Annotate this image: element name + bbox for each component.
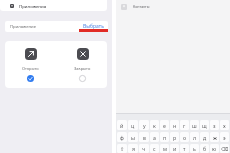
staticText: у — [143, 122, 146, 129]
staticText: Закрыто — [74, 66, 91, 71]
staticText: ш — [192, 122, 197, 129]
button[interactable]: т — [180, 144, 189, 153]
staticText: ю — [212, 145, 217, 152]
button[interactable]: р — [170, 132, 179, 142]
button[interactable]: Закрыть — [58, 48, 107, 82]
button[interactable]: я — [128, 144, 138, 153]
button[interactable]: ж — [210, 132, 219, 142]
button[interactable]: Открыть — [6, 48, 55, 82]
button[interactable]: н — [170, 120, 179, 130]
staticText: д — [203, 134, 207, 141]
staticText: х — [223, 122, 226, 129]
button[interactable]: у — [139, 120, 149, 130]
button[interactable]: к — [150, 120, 159, 130]
button[interactable]: л — [190, 132, 199, 142]
staticText: и — [173, 145, 177, 152]
staticText: п — [163, 134, 167, 141]
button[interactable]: й — [117, 120, 127, 130]
button[interactable]: х — [220, 120, 229, 130]
button[interactable]: Приложение — [5, 21, 108, 32]
button[interactable]: м — [160, 144, 169, 153]
button[interactable]: ц — [128, 120, 138, 130]
button[interactable]: ь — [190, 144, 199, 153]
staticText: Приложения — [19, 3, 47, 9]
staticText: г — [183, 122, 186, 129]
staticText: ь — [193, 145, 196, 152]
button[interactable]: о — [180, 132, 189, 142]
staticText: Контакты — [133, 4, 150, 9]
button[interactable]: д — [200, 132, 209, 142]
staticText: Приложение — [10, 24, 36, 30]
staticText: н — [173, 122, 177, 129]
staticText: м — [163, 145, 167, 152]
staticText: Открыто — [22, 66, 39, 71]
button[interactable]: Приложения — [0, 0, 107, 11]
button[interactable]: Контакты — [121, 0, 230, 13]
staticText: к — [153, 122, 156, 129]
staticText: е — [163, 122, 166, 129]
button[interactable]: п — [160, 132, 169, 142]
button[interactable]: ф — [117, 132, 127, 142]
button[interactable]: щ — [200, 120, 209, 130]
button[interactable]: з — [210, 120, 219, 130]
staticText: з — [213, 122, 216, 129]
staticText: т — [183, 145, 186, 152]
button[interactable]: ⇧ — [117, 144, 127, 153]
other: Контакты — [121, 4, 127, 10]
staticText: а — [153, 134, 156, 141]
button[interactable]: а — [150, 132, 159, 142]
staticText: Выбрать — [83, 23, 104, 30]
button[interactable]: в — [139, 132, 149, 142]
button[interactable]: и — [170, 144, 179, 153]
button[interactable]: ч — [139, 144, 149, 153]
button[interactable]: ю — [210, 144, 219, 153]
staticText: р — [173, 134, 177, 141]
staticText: ⌫ — [221, 146, 229, 152]
staticText: в — [143, 134, 146, 141]
staticText: й — [120, 122, 124, 129]
staticText: я — [132, 145, 135, 152]
button[interactable]: ш — [190, 120, 199, 130]
staticText: ⇧ — [120, 146, 125, 152]
staticText: ц — [131, 122, 135, 129]
staticText: ч — [142, 145, 146, 152]
staticText: э — [223, 134, 226, 141]
other: Открыть — [25, 48, 37, 60]
other: Закрыть — [77, 48, 89, 60]
button[interactable]: с — [150, 144, 159, 153]
staticText: л — [193, 134, 197, 141]
staticText: ы — [131, 134, 135, 141]
staticText: ж — [213, 134, 217, 141]
button[interactable]: б — [200, 144, 209, 153]
staticText: щ — [202, 122, 207, 129]
button[interactable]: г — [180, 120, 189, 130]
button[interactable]: ⌫ — [220, 144, 229, 153]
button[interactable]: э — [220, 132, 229, 142]
staticText: ф — [120, 134, 124, 141]
staticText: о — [183, 134, 187, 141]
button[interactable]: ы — [128, 132, 138, 142]
button[interactable]: е — [160, 120, 169, 130]
staticText: б — [203, 145, 207, 152]
staticText: с — [153, 145, 156, 152]
